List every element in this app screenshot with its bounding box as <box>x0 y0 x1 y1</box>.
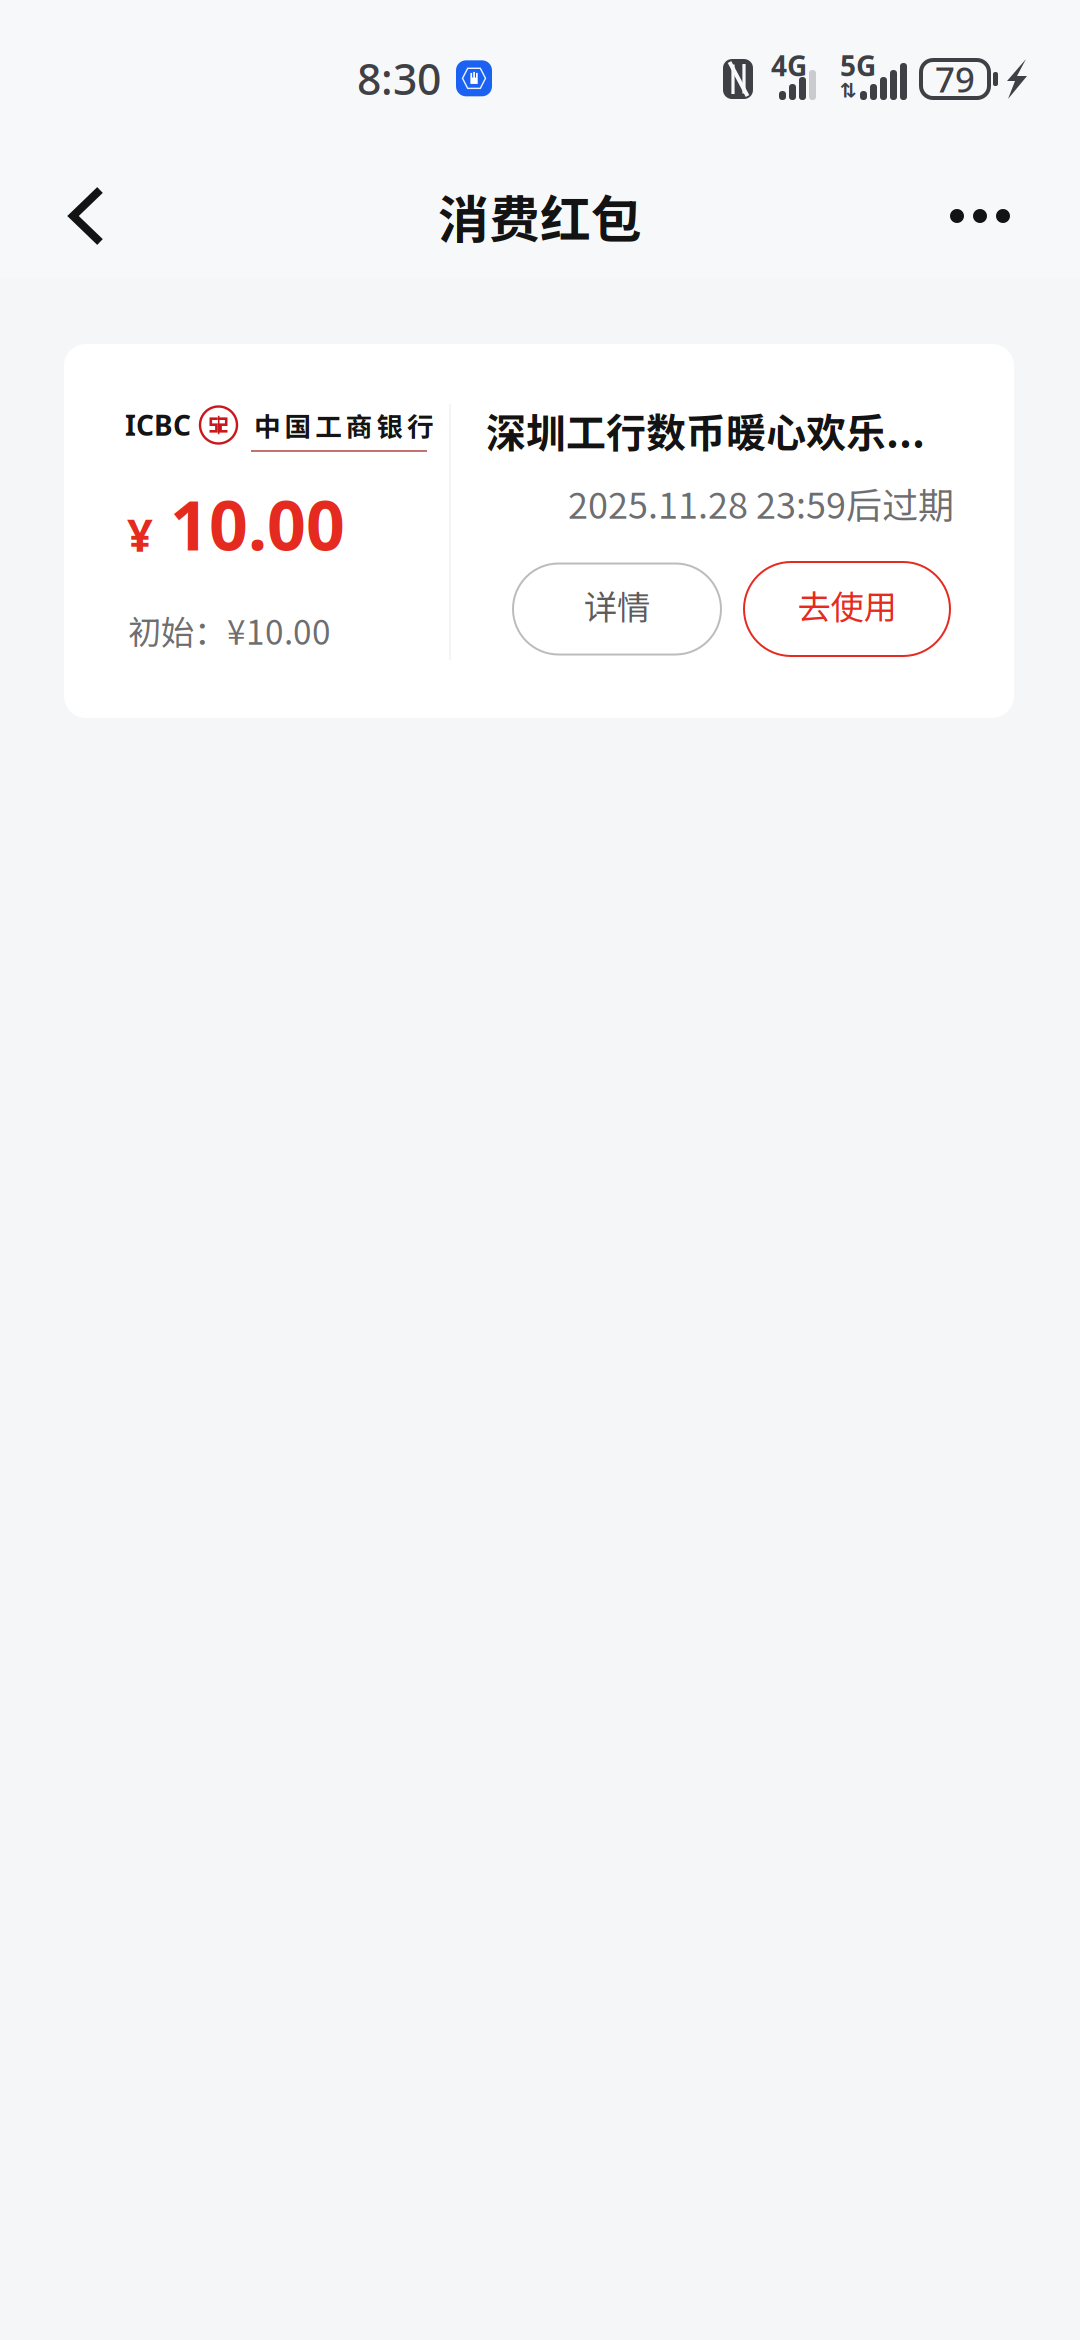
staticText: 去使用 <box>797 581 896 629</box>
button[interactable]: More options <box>925 154 1035 264</box>
staticText: ⇅ <box>840 79 857 102</box>
staticText: 10.00 <box>170 479 345 569</box>
staticText: 4G <box>771 47 807 84</box>
button[interactable]: Back <box>32 154 142 264</box>
staticText: 深圳工行数币暖心欢乐... <box>486 401 925 459</box>
staticText: 详情 <box>584 581 650 629</box>
staticText: 2025.11.28 23:59后过期 <box>568 477 954 529</box>
button[interactable]: ICBC <box>64 344 1014 718</box>
staticText: 中国工商银行 <box>254 406 434 444</box>
staticText: ICBC <box>125 406 191 444</box>
staticText: 5G <box>840 47 876 84</box>
button[interactable]: 详情 <box>513 563 721 654</box>
staticText: 消费红包 <box>438 179 642 253</box>
staticText: 初始：¥10.00 <box>128 606 331 654</box>
staticText: 79 <box>935 56 975 102</box>
staticText: 8:30 <box>357 50 441 107</box>
button[interactable]: 去使用 <box>744 562 950 656</box>
staticText: ¥ <box>127 504 153 564</box>
